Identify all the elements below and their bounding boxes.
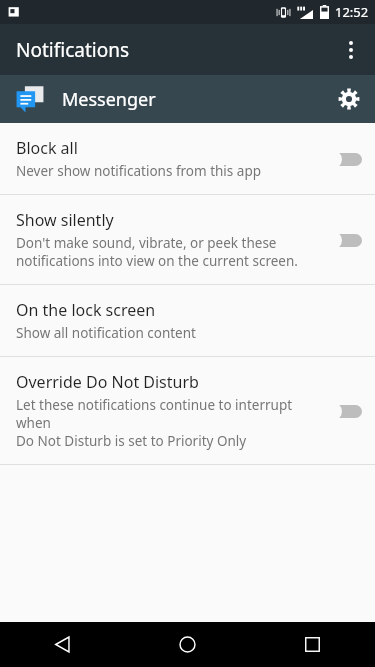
button[interactable]: On the lock screen bbox=[0, 285, 375, 356]
button[interactable]: Show silently bbox=[0, 195, 375, 284]
button[interactable]: Recent apps bbox=[250, 622, 375, 667]
staticText: Let these notifications continue to inte… bbox=[16, 396, 315, 450]
staticText: Show all notification content bbox=[16, 324, 196, 342]
button[interactable]: Override Do Not Disturb bbox=[0, 357, 375, 464]
button[interactable]: Toggle bbox=[323, 398, 363, 424]
staticText: Show silently bbox=[16, 209, 114, 231]
staticText: Don't make sound, vibrate, or peek these… bbox=[16, 234, 298, 270]
button[interactable]: Toggle bbox=[323, 146, 363, 172]
button[interactable]: Messenger bbox=[0, 75, 375, 123]
staticText: On the lock screen bbox=[16, 299, 156, 321]
staticText: Notifications bbox=[16, 37, 130, 63]
staticText: Messenger bbox=[62, 87, 156, 112]
staticText: Block all bbox=[16, 137, 78, 159]
button[interactable]: Home bbox=[125, 622, 250, 667]
staticText: Override Do Not Disturb bbox=[16, 371, 199, 393]
staticText: Never show notifications from this app bbox=[16, 162, 261, 180]
button[interactable]: Toggle bbox=[323, 227, 363, 253]
button[interactable]: More options bbox=[327, 24, 375, 75]
button[interactable]: Back bbox=[0, 622, 125, 667]
button[interactable]: Settings bbox=[323, 75, 375, 123]
staticText: 12:52 bbox=[335, 3, 369, 21]
button[interactable]: Block all bbox=[0, 123, 375, 194]
